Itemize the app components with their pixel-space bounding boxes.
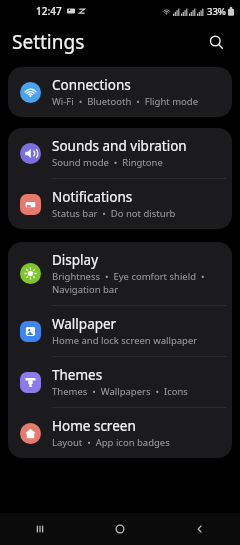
staticText: Wi-Fi • Bluetooth • Flight mode bbox=[52, 95, 198, 108]
staticText: Status bar • Do not disturb bbox=[52, 207, 176, 220]
staticText: Themes • Wallpapers • Icons bbox=[52, 385, 188, 398]
staticText: Layout • App icon badges bbox=[52, 436, 170, 449]
button[interactable]: Display bbox=[8, 242, 232, 305]
staticText: 12:47 bbox=[36, 4, 62, 18]
button[interactable]: Wallpaper bbox=[8, 306, 232, 356]
button[interactable]: Recents bbox=[17, 514, 63, 544]
staticText: Themes bbox=[52, 366, 103, 384]
button[interactable]: Themes bbox=[8, 357, 232, 407]
button[interactable]: Sounds and vibration bbox=[8, 128, 232, 178]
staticText: Connections bbox=[52, 76, 131, 94]
staticText: Sound mode • Ringtone bbox=[52, 156, 163, 169]
staticText: Home screen bbox=[52, 417, 136, 435]
staticText: Home and lock screen wallpaper bbox=[52, 334, 198, 347]
staticText: Brightness • Eye comfort shield • bbox=[52, 270, 205, 283]
staticText: Sounds and vibration bbox=[52, 137, 187, 155]
button[interactable]: Home bbox=[97, 514, 143, 544]
staticText: 33% bbox=[207, 5, 226, 18]
staticText: Display bbox=[52, 251, 99, 269]
button[interactable]: Back bbox=[177, 514, 223, 544]
button[interactable]: Home screen bbox=[8, 408, 232, 458]
staticText: Wallpaper bbox=[52, 315, 117, 333]
button[interactable]: Search bbox=[202, 28, 230, 56]
button[interactable]: Notifications bbox=[8, 179, 232, 229]
staticText: Notifications bbox=[52, 188, 133, 206]
staticText: Settings bbox=[12, 29, 85, 55]
staticText: Navigation bar bbox=[52, 283, 119, 296]
button[interactable]: Connections bbox=[8, 67, 232, 117]
